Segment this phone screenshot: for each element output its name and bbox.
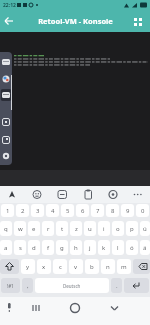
staticText: e (32, 225, 36, 233)
staticText: w (18, 225, 23, 233)
staticText: Deutsch (63, 283, 81, 289)
button[interactable]: g (56, 240, 68, 255)
button[interactable] (0, 297, 37, 325)
button[interactable]: o (112, 221, 124, 236)
staticText: Retool-VM - Konsole (38, 16, 113, 26)
staticText: h (74, 244, 78, 252)
staticText: . (116, 282, 118, 290)
button[interactable]: 0 (136, 204, 149, 217)
button[interactable]: f (42, 240, 54, 255)
button[interactable] (133, 259, 150, 274)
staticText: 22:12 (3, 2, 16, 9)
staticText: z (75, 225, 78, 233)
button[interactable] (0, 259, 19, 274)
button[interactable]: p (126, 221, 138, 236)
staticText: t (61, 225, 64, 233)
button[interactable]: m (117, 259, 131, 274)
staticText: m (121, 263, 127, 271)
staticText: a (4, 244, 8, 252)
button[interactable]: 1 (1, 204, 14, 217)
staticText: n (106, 263, 110, 271)
staticText: 0 (141, 207, 145, 215)
staticText: q (4, 225, 8, 233)
staticText: y (26, 263, 30, 271)
staticText: j (89, 244, 91, 252)
button[interactable] (25, 186, 50, 203)
staticText: !#1 (7, 283, 14, 289)
staticText: ä (143, 244, 147, 252)
button[interactable]: b (85, 259, 99, 274)
button[interactable]: 3 (31, 204, 44, 217)
button[interactable]: 2 (16, 204, 29, 217)
staticText: b (90, 263, 94, 271)
staticText: ö (130, 244, 134, 252)
button[interactable]: w (14, 221, 26, 236)
staticText: 2 (21, 207, 25, 215)
button[interactable]: k (98, 240, 110, 255)
button[interactable]: 7 (91, 204, 104, 217)
button[interactable]: ö (126, 240, 138, 255)
button[interactable]: s (14, 240, 26, 255)
staticText: r (47, 225, 50, 233)
button[interactable]: ä (140, 240, 150, 255)
button[interactable]: z (70, 221, 82, 236)
staticText: l (117, 244, 119, 252)
button[interactable]: n (101, 259, 115, 274)
button[interactable] (0, 186, 25, 203)
button[interactable]: !#1 (1, 278, 20, 293)
button[interactable]: ü (140, 221, 150, 236)
staticText: d (32, 244, 36, 252)
button[interactable]: 9 (121, 204, 134, 217)
button[interactable]: y (21, 259, 35, 274)
staticText: 7 (96, 207, 100, 215)
staticText: s (19, 244, 22, 252)
button[interactable] (74, 297, 112, 325)
button[interactable]: 8 (106, 204, 119, 217)
button[interactable]: q (0, 221, 12, 236)
staticText: u (88, 225, 92, 233)
button[interactable] (125, 186, 150, 203)
button[interactable]: h (70, 240, 82, 255)
staticText: g (60, 244, 64, 252)
button[interactable]: 4 (46, 204, 59, 217)
staticText: p (130, 225, 134, 233)
button[interactable]: . (111, 278, 122, 293)
button[interactable]: x (37, 259, 51, 274)
button[interactable]: c (53, 259, 67, 274)
button[interactable] (100, 186, 125, 203)
button[interactable] (37, 297, 74, 325)
button[interactable]: t (56, 221, 68, 236)
button[interactable]: a (0, 240, 12, 255)
staticText: k (102, 244, 106, 252)
button[interactable]: Deutsch (35, 278, 109, 293)
button[interactable]: d (28, 240, 40, 255)
staticText: f (47, 244, 50, 252)
button[interactable]: , (22, 278, 33, 293)
staticText: 4 (51, 207, 55, 215)
staticText: ü (143, 225, 147, 233)
button[interactable]: u (84, 221, 96, 236)
button[interactable] (124, 278, 149, 293)
button[interactable] (131, 14, 145, 28)
button[interactable]: 5 (61, 204, 74, 217)
staticText: , (27, 282, 29, 290)
staticText: c (59, 263, 62, 271)
button[interactable]: l (112, 240, 124, 255)
staticText: 1 (6, 207, 10, 215)
button[interactable] (0, 13, 16, 29)
staticText: i (103, 225, 105, 233)
button[interactable]: e (28, 221, 40, 236)
button[interactable]: i (98, 221, 110, 236)
button[interactable]: j (84, 240, 96, 255)
button[interactable]: 6 (76, 204, 89, 217)
button[interactable]: r (42, 221, 54, 236)
button[interactable] (75, 186, 100, 203)
staticText: 9 (126, 207, 130, 215)
staticText: 8 (111, 207, 115, 215)
staticText: v (74, 263, 78, 271)
button[interactable]: v (69, 259, 83, 274)
staticText: 5 (66, 207, 70, 215)
button[interactable] (112, 297, 150, 325)
staticText: x (42, 263, 46, 271)
button[interactable] (50, 186, 75, 203)
